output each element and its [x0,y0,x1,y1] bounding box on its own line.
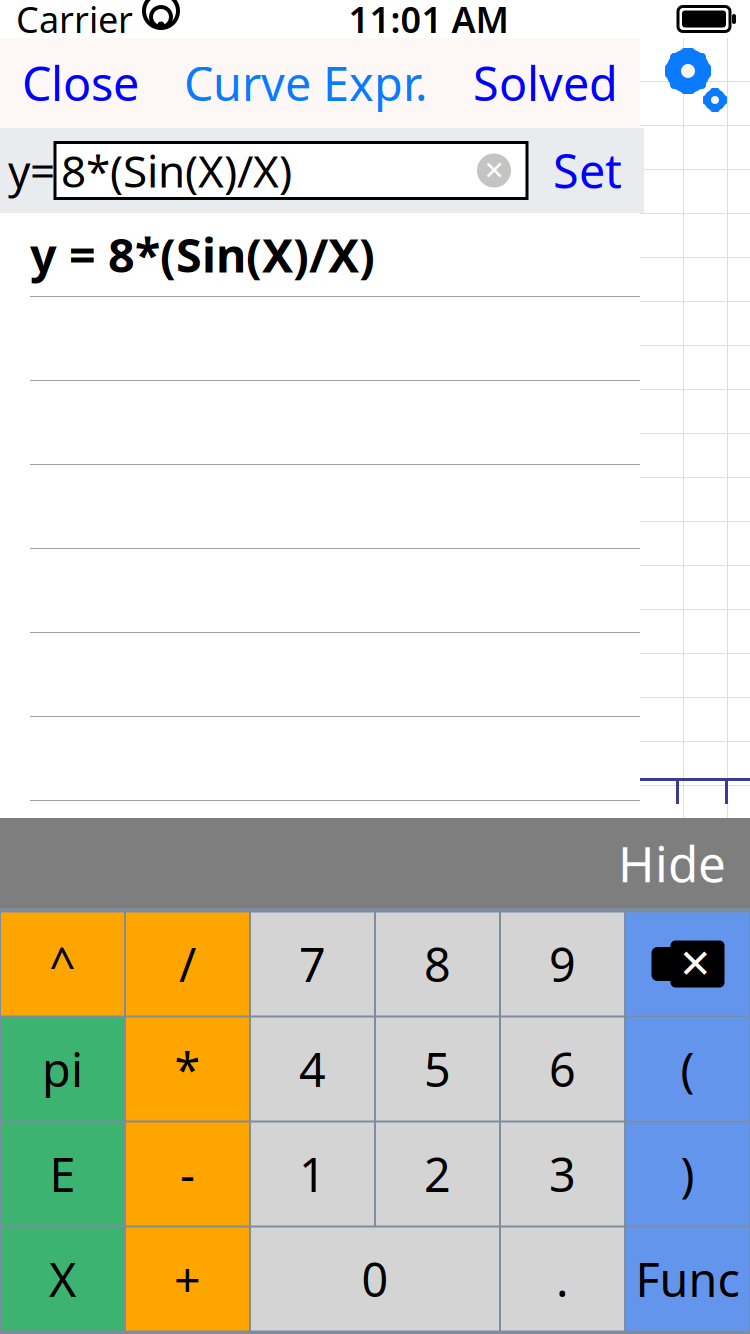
button[interactable]: 8 [376,912,499,1015]
button[interactable]: Hide [606,826,738,900]
staticText: 1 [299,1143,326,1205]
button[interactable]: 1 [251,1122,374,1225]
button[interactable]: Settings [650,44,750,118]
staticText: 8 [424,933,451,995]
button[interactable]: ^ [1,912,124,1015]
staticText: 2 [424,1143,451,1205]
button[interactable]: ( [626,1017,749,1120]
staticText: Hide [618,830,726,896]
button[interactable]: Delete [626,912,749,1015]
button[interactable]: 6 [501,1017,624,1120]
staticText: 7 [299,933,326,995]
staticText: Close [22,52,139,114]
staticText: ) [680,1143,694,1205]
staticText: pi [42,1038,83,1100]
button[interactable]: 5 [376,1017,499,1120]
button[interactable]: 8*(Sin(X)/X) [55,142,527,198]
staticText: E [49,1143,75,1205]
staticText: Solved [473,52,618,114]
staticText: ^ [49,933,76,995]
staticText: 6 [549,1038,576,1100]
button[interactable]: pi [1,1017,124,1120]
staticText: 0 [361,1248,388,1310]
button[interactable]: Solved [453,38,638,128]
button[interactable]: E [1,1122,124,1225]
button[interactable]: * [126,1017,249,1120]
staticText: / [179,933,196,995]
staticText: - [180,1143,195,1205]
button[interactable]: 4 [251,1017,374,1120]
button[interactable]: Set [535,127,640,213]
staticText: X [49,1248,76,1310]
button[interactable]: - [126,1122,249,1225]
staticText: 11:01 AM [348,0,508,43]
button[interactable]: 9 [501,912,624,1015]
staticText: Curve Expr. [184,52,428,114]
button[interactable]: X [1,1227,124,1330]
staticText: ✕ [678,941,712,987]
staticText: y = 8*(Sin(X)/X) [30,223,375,285]
staticText: 5 [424,1038,451,1100]
staticText: ✕ [483,156,504,185]
staticText: 3 [549,1143,576,1205]
button[interactable]: 3 [501,1122,624,1225]
staticText: y= [8,141,55,200]
staticText: + [174,1248,201,1310]
staticText: Set [553,139,622,201]
button[interactable]: ) [626,1122,749,1225]
staticText: . [556,1248,569,1310]
button[interactable]: + [126,1227,249,1330]
button[interactable]: / [126,912,249,1015]
button[interactable]: 2 [376,1122,499,1225]
staticText: 4 [299,1038,326,1100]
staticText: 8*(Sin(X)/X) [61,141,292,200]
staticText: Carrier [16,0,133,43]
button[interactable]: 0 [251,1227,499,1330]
button[interactable]: 7 [251,912,374,1015]
button[interactable]: . [501,1227,624,1330]
staticText: ( [680,1038,694,1100]
staticText: * [174,1038,200,1100]
button[interactable]: Close [2,38,159,128]
button[interactable]: Curve Expr. [174,38,438,128]
staticText: 9 [549,933,576,995]
staticText: Func [635,1248,739,1310]
button[interactable]: Func [626,1227,749,1330]
